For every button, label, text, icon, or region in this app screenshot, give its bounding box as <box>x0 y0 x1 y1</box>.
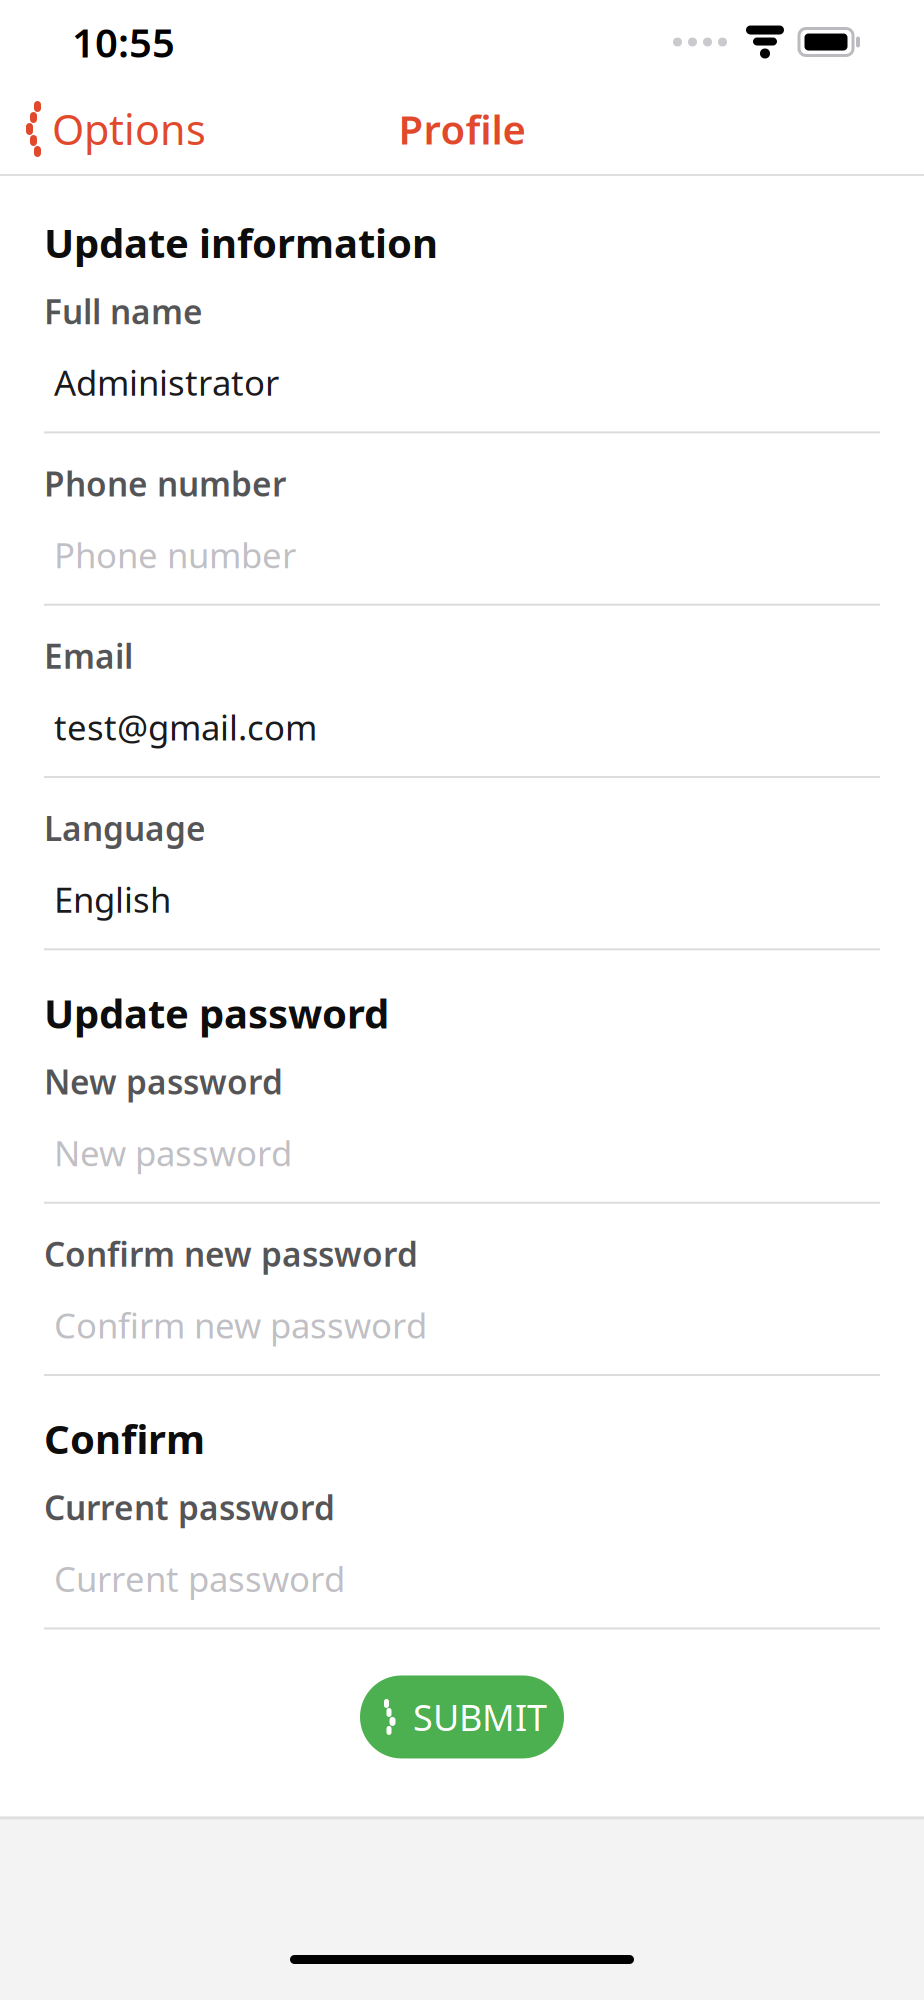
staticText: Confirm <box>44 1412 205 1465</box>
staticText: test@gmail.com <box>54 704 317 750</box>
staticText: Administrator <box>54 359 279 405</box>
button[interactable]: Confirm new password <box>0 1232 924 1376</box>
button[interactable]: Options <box>0 88 222 170</box>
staticText: Profile <box>398 102 525 155</box>
staticText: New password <box>54 1130 292 1176</box>
staticText: Phone number <box>54 532 296 578</box>
staticText: Phone number <box>44 461 286 506</box>
staticText: Confirm new password <box>44 1232 418 1276</box>
button[interactable]: Current password <box>0 1485 924 1629</box>
staticText: Full name <box>44 289 203 333</box>
staticText: Update password <box>44 986 389 1039</box>
button[interactable]: SUBMIT <box>360 1675 564 1758</box>
staticText: Options <box>52 102 206 156</box>
staticText: Email <box>44 634 133 678</box>
button[interactable]: Phone number <box>0 461 924 606</box>
button[interactable]: Full name <box>0 289 924 433</box>
staticText: SUBMIT <box>413 1693 547 1741</box>
staticText: Current password <box>54 1555 345 1601</box>
staticText: Confirm new password <box>54 1302 427 1348</box>
staticText: 10:55 <box>72 15 175 68</box>
button[interactable]: Email <box>0 634 924 778</box>
staticText: Update information <box>44 216 438 269</box>
staticText: Language <box>44 806 206 850</box>
staticText: English <box>54 876 171 922</box>
staticText: New password <box>44 1059 283 1104</box>
button[interactable]: Language <box>0 806 924 950</box>
button[interactable]: New password <box>0 1059 924 1204</box>
staticText: Current password <box>44 1485 335 1529</box>
